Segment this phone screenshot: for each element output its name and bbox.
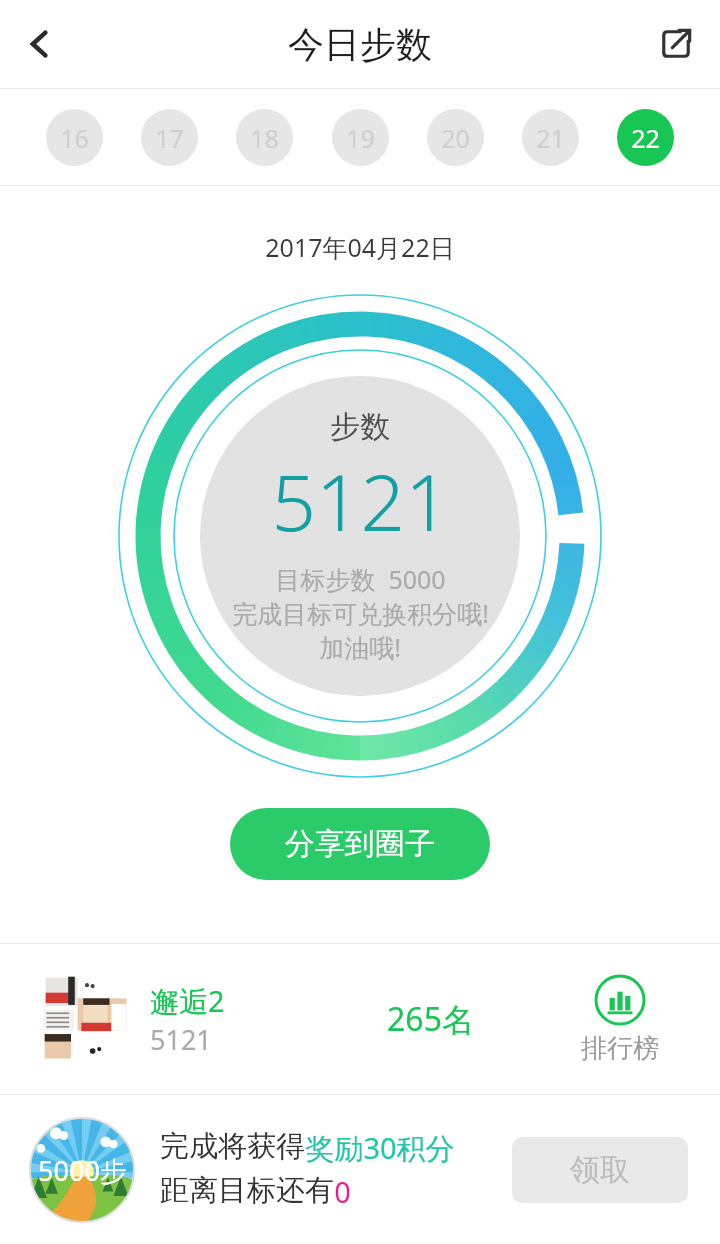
staticText: 5121	[271, 448, 450, 554]
button[interactable]: 22	[617, 109, 674, 166]
staticText: 步数	[330, 408, 390, 446]
button[interactable]: 16	[46, 109, 103, 166]
staticText: 邂逅2	[150, 981, 225, 1021]
button[interactable]: Share	[646, 14, 706, 74]
staticText: 领取	[570, 1151, 630, 1189]
staticText: 今日步数	[288, 22, 432, 67]
button[interactable]: Back	[8, 12, 72, 76]
staticText: 21	[536, 121, 565, 155]
button[interactable]: 邂逅2	[40, 972, 300, 1066]
staticText: 目标步数 5000	[275, 562, 446, 596]
button[interactable]: 领取	[512, 1137, 688, 1203]
staticText: 19	[346, 121, 375, 155]
staticText: 距离目标还有	[160, 1172, 334, 1209]
button[interactable]: 21	[522, 109, 579, 166]
staticText: 排行榜	[581, 1032, 659, 1065]
button[interactable]: 18	[236, 109, 293, 166]
staticText: 加油哦!	[319, 630, 401, 664]
staticText: 5000步	[38, 1152, 127, 1189]
button[interactable]: 分享到圈子	[230, 808, 490, 880]
staticText: 完成目标可兑换积分哦!	[232, 596, 489, 630]
staticText: 20	[441, 121, 470, 155]
staticText: 5121	[150, 1021, 212, 1058]
staticText: 18	[250, 121, 279, 155]
staticText: 22	[631, 121, 660, 155]
staticText: 265名	[387, 997, 474, 1041]
staticText: 17	[155, 121, 184, 155]
button[interactable]: 排行榜	[560, 974, 680, 1065]
staticText: 16	[60, 121, 89, 155]
button[interactable]: 19	[332, 109, 389, 166]
staticText: 0	[334, 1172, 351, 1211]
staticText: 2017年04月22日	[265, 230, 455, 264]
staticText: 奖励30积分	[305, 1128, 455, 1168]
button[interactable]: 20	[427, 109, 484, 166]
button[interactable]: 17	[141, 109, 198, 166]
staticText: 分享到圈子	[285, 825, 435, 863]
staticText: 完成将获得	[160, 1128, 305, 1165]
